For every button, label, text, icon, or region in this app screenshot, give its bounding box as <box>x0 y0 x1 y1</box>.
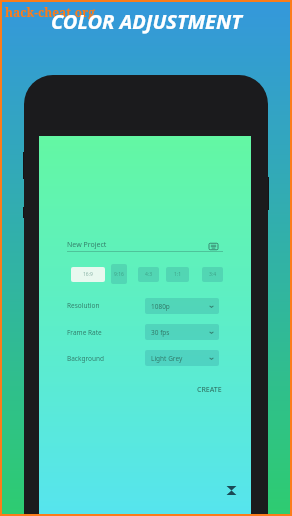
staticText: New Project <box>67 240 107 250</box>
button[interactable]: 4:3 <box>138 267 159 282</box>
button[interactable]: 1080p <box>145 298 219 314</box>
button[interactable]: 3:4 <box>202 267 223 282</box>
button[interactable]: Keyboard <box>209 242 218 251</box>
staticText: 16:9 <box>83 271 93 278</box>
staticText: 1:1 <box>174 271 182 278</box>
staticText: 30 fps <box>151 328 170 337</box>
button[interactable]: 30 fps <box>145 324 219 340</box>
staticText: 1080p <box>151 302 170 311</box>
staticText: COLOR ADJUSTMENT <box>51 8 242 35</box>
button[interactable]: 1:1 <box>166 267 189 282</box>
staticText: Background <box>67 354 104 363</box>
staticText: 4:3 <box>145 271 153 278</box>
staticText: 9:16 <box>114 271 124 278</box>
staticText: Light Grey <box>151 354 183 363</box>
button[interactable]: 9:16 <box>111 264 127 284</box>
staticText: CREATE <box>197 385 222 395</box>
button[interactable]: Light Grey <box>145 350 219 366</box>
staticText: hack-cheat.org <box>5 4 96 20</box>
staticText: Frame Rate <box>67 328 102 337</box>
button[interactable]: 16:9 <box>71 267 105 282</box>
staticText: 3:4 <box>209 271 217 278</box>
button[interactable]: CREATE <box>194 382 225 398</box>
staticText: Resolution <box>67 301 100 310</box>
button[interactable]: Timeline <box>225 484 238 497</box>
